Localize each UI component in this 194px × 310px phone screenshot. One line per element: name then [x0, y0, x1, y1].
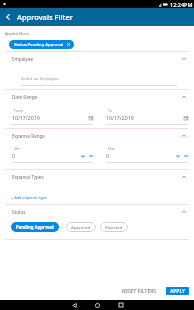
button[interactable]: Date Range [12, 90, 187, 103]
button[interactable]: APPLY [166, 287, 189, 295]
button[interactable]: Increase [89, 154, 93, 158]
staticText: APPLY [170, 288, 185, 295]
button[interactable]: Recents [109, 300, 132, 310]
staticText: Pending Approval [16, 224, 54, 230]
staticText: Rejected [105, 224, 123, 230]
button[interactable]: Back [0, 8, 16, 26]
button[interactable]: Employee [12, 52, 187, 65]
staticText: Status:Pending Approval [14, 42, 64, 48]
staticText: Max [108, 146, 116, 151]
button[interactable]: Back [63, 300, 86, 310]
button[interactable]: Pick date [89, 116, 93, 120]
staticText: Select an Employee [21, 76, 59, 82]
staticText: 0 [106, 152, 109, 159]
button[interactable]: Pending Approval [16, 222, 54, 232]
button[interactable]: Increase [184, 154, 188, 158]
staticText: Status [12, 209, 26, 215]
button[interactable]: Status:Pending Approval [14, 40, 70, 49]
staticText: From [14, 108, 23, 113]
button[interactable]: + Add expense type [11, 195, 47, 200]
staticText: Expense Types [12, 174, 44, 180]
staticText: Approved [71, 224, 91, 230]
button[interactable]: Pick date [184, 116, 188, 120]
staticText: Min [14, 146, 21, 151]
staticText: To [108, 108, 112, 113]
staticText: Employee [12, 56, 34, 62]
staticText: 10/17/2019 [106, 114, 134, 121]
button[interactable]: Decrease [81, 154, 85, 158]
button[interactable]: Home [86, 300, 109, 310]
button[interactable]: Expense Range [12, 129, 187, 142]
button[interactable]: Rejected [105, 222, 123, 232]
button[interactable]: Status [12, 205, 187, 218]
staticText: RESET FILTERS [122, 288, 157, 295]
other: Remove filter [67, 43, 70, 46]
staticText: 12:24PM [170, 1, 193, 8]
staticText: Approvals Filter [17, 12, 73, 22]
staticText: + Add expense type [11, 195, 47, 200]
button[interactable]: Approved [71, 222, 91, 232]
staticText: 10/17/2019 [12, 114, 40, 121]
button[interactable]: Expense Types [12, 170, 187, 183]
button[interactable]: RESET FILTERS [117, 285, 162, 298]
staticText: Date Range [12, 94, 38, 100]
staticText: Expense Range [12, 133, 45, 139]
staticText: Applied filters [5, 31, 29, 36]
button[interactable]: Decrease [176, 154, 180, 158]
staticText: 0 [12, 152, 15, 159]
